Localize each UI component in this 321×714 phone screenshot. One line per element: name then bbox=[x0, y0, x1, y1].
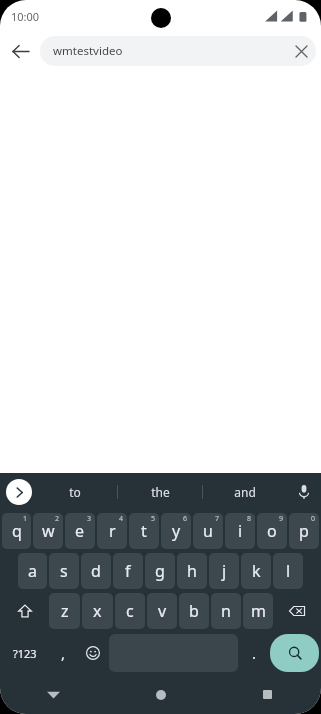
button[interactable]: to bbox=[32, 473, 117, 511]
staticText: 5 bbox=[151, 514, 156, 524]
button[interactable]: Recents bbox=[214, 675, 321, 714]
staticText: p bbox=[299, 520, 309, 542]
staticText: to bbox=[69, 484, 81, 500]
staticText: x bbox=[93, 600, 102, 622]
staticText: n bbox=[221, 600, 231, 622]
button[interactable]: Clear bbox=[286, 36, 316, 66]
staticText: 10:00 bbox=[11, 9, 40, 24]
staticText: . bbox=[252, 643, 257, 663]
button[interactable]: h bbox=[177, 553, 207, 589]
staticText: 6 bbox=[183, 514, 188, 524]
staticText: i bbox=[238, 520, 243, 542]
button[interactable]: q bbox=[2, 513, 31, 549]
button[interactable]: Emoji bbox=[79, 634, 107, 672]
button[interactable]: Back bbox=[0, 33, 40, 69]
staticText: r bbox=[109, 520, 116, 542]
button[interactable]: u bbox=[193, 513, 223, 549]
staticText: 4 bbox=[119, 514, 124, 524]
button[interactable]: w bbox=[33, 513, 63, 549]
staticText: z bbox=[61, 600, 69, 622]
button[interactable]: ?123 bbox=[2, 634, 47, 672]
staticText: e bbox=[75, 520, 85, 542]
button[interactable]: a bbox=[18, 553, 47, 589]
button[interactable]: s bbox=[49, 553, 79, 589]
staticText: 1 bbox=[23, 514, 28, 524]
button[interactable]: j bbox=[209, 553, 239, 589]
button[interactable]: c bbox=[115, 593, 145, 629]
staticText: b bbox=[189, 600, 199, 622]
staticText: d bbox=[91, 560, 101, 582]
button[interactable]: Home bbox=[107, 675, 214, 714]
button[interactable]: k bbox=[241, 553, 271, 589]
button[interactable]: Shift bbox=[2, 593, 47, 629]
staticText: the bbox=[151, 484, 170, 500]
staticText: 2 bbox=[55, 514, 60, 524]
button[interactable]: v bbox=[147, 593, 177, 629]
button[interactable]: Voice input bbox=[287, 473, 321, 511]
button[interactable]: the bbox=[118, 473, 202, 511]
button[interactable]: Expand suggestions bbox=[6, 479, 32, 505]
button[interactable]: x bbox=[82, 593, 113, 629]
button[interactable]: g bbox=[145, 553, 175, 589]
staticText: h bbox=[187, 560, 197, 582]
staticText: f bbox=[125, 560, 131, 582]
button[interactable]: i bbox=[225, 513, 255, 549]
button[interactable]: p bbox=[289, 513, 319, 549]
staticText: 3 bbox=[87, 514, 92, 524]
staticText: v bbox=[158, 600, 167, 622]
button[interactable]: t bbox=[129, 513, 159, 549]
button[interactable]: f bbox=[113, 553, 143, 589]
staticText: 8 bbox=[247, 514, 252, 524]
staticText: 0 bbox=[311, 514, 316, 524]
button[interactable]: and bbox=[203, 473, 287, 511]
staticText: o bbox=[267, 520, 277, 542]
staticText: m bbox=[251, 600, 266, 622]
button[interactable]: r bbox=[97, 513, 127, 549]
staticText: g bbox=[155, 560, 165, 582]
staticText: wmtestvideo bbox=[53, 43, 286, 59]
staticText: a bbox=[28, 560, 37, 582]
button[interactable]: l bbox=[273, 553, 303, 589]
button[interactable]: n bbox=[211, 593, 241, 629]
staticText: ?123 bbox=[13, 646, 37, 661]
button[interactable]: o bbox=[257, 513, 287, 549]
staticText: k bbox=[252, 560, 261, 582]
staticText: y bbox=[172, 520, 181, 542]
button[interactable]: wmtestvideo bbox=[40, 36, 316, 66]
button[interactable]: e bbox=[65, 513, 95, 549]
button[interactable]: b bbox=[179, 593, 209, 629]
staticText: , bbox=[61, 643, 66, 663]
button[interactable]: , bbox=[49, 634, 77, 672]
staticText: j bbox=[222, 560, 227, 582]
staticText: u bbox=[203, 520, 213, 542]
staticText: and bbox=[234, 484, 256, 500]
staticText: 7 bbox=[215, 514, 220, 524]
button[interactable]: Search bbox=[270, 634, 319, 672]
button[interactable]: Back bbox=[0, 675, 107, 714]
button[interactable]: m bbox=[243, 593, 273, 629]
button[interactable]: Backspace bbox=[275, 593, 319, 629]
staticText: s bbox=[60, 560, 68, 582]
button[interactable]: d bbox=[81, 553, 111, 589]
staticText: t bbox=[141, 520, 147, 542]
staticText: 9 bbox=[279, 514, 284, 524]
staticText: q bbox=[12, 520, 22, 542]
button[interactable]: . bbox=[240, 634, 268, 672]
button[interactable]: z bbox=[49, 593, 80, 629]
button[interactable]: y bbox=[161, 513, 191, 549]
staticText: l bbox=[286, 560, 291, 582]
staticText: c bbox=[126, 600, 134, 622]
staticText: w bbox=[42, 520, 55, 542]
